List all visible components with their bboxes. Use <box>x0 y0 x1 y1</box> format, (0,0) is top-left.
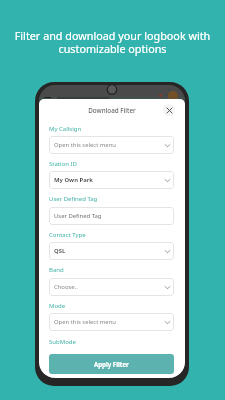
staticText: Band <box>49 266 64 274</box>
staticText: QSL <box>54 247 66 255</box>
staticText: Contact Type <box>49 231 86 239</box>
button[interactable]: Choose.. <box>49 278 174 296</box>
button[interactable]: Apply Filter <box>49 354 174 374</box>
staticText: Mode <box>49 302 66 310</box>
staticText: User Defined Tag <box>49 195 98 203</box>
button[interactable]: QSL <box>49 242 174 260</box>
staticText: User Defined Tag <box>54 212 102 220</box>
button[interactable]: Open this select menu <box>49 313 174 331</box>
button[interactable]: My Own Park <box>49 171 174 189</box>
staticText: My Own Park <box>54 176 93 184</box>
staticText: Open this select menu <box>54 318 116 326</box>
staticText: Filter and download your logbook with <box>0 28 225 43</box>
staticText: Choose.. <box>54 283 78 291</box>
staticText: Download Filter <box>39 106 185 115</box>
button[interactable]: Open this select menu <box>49 136 174 154</box>
staticText: Open this select menu <box>54 141 116 149</box>
button[interactable]: User Defined Tag <box>49 207 174 225</box>
staticText: SubMode <box>49 338 76 346</box>
staticText: Apply Filter <box>94 360 129 368</box>
staticText: My Callsign <box>49 125 82 133</box>
staticText: Station ID <box>49 160 77 168</box>
button[interactable]: Close <box>163 104 175 116</box>
staticText: customizable options <box>0 41 225 56</box>
